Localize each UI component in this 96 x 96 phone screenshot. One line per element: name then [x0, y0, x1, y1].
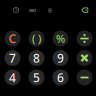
button[interactable]: %: [52, 30, 68, 46]
staticText: 4: [9, 69, 16, 85]
staticText: 5: [33, 69, 40, 85]
staticText: %: [56, 31, 65, 46]
button[interactable]: ( ): [28, 30, 44, 46]
button[interactable]: 7: [4, 50, 20, 66]
staticText: 7: [9, 50, 16, 66]
button[interactable]: Keypad: [48, 8, 52, 12]
button[interactable]: Display: [29, 7, 36, 13]
button[interactable]: History: [12, 6, 20, 14]
staticText: ( ): [32, 31, 41, 46]
button[interactable]: 9: [52, 50, 68, 66]
button[interactable]: 4: [4, 69, 20, 85]
button[interactable]: 8: [28, 50, 44, 66]
staticText: 8: [33, 50, 40, 66]
staticText: C: [8, 30, 16, 46]
button[interactable]: 5: [28, 69, 44, 85]
button[interactable]: Delete: [81, 7, 89, 13]
button[interactable]: Minus: [76, 69, 92, 85]
button[interactable]: C: [4, 30, 20, 46]
staticText: 6: [57, 69, 64, 85]
button[interactable]: Divide: [76, 30, 92, 46]
staticText: 9: [57, 50, 64, 66]
button[interactable]: Multiply: [76, 50, 92, 66]
button[interactable]: 6: [52, 69, 68, 85]
